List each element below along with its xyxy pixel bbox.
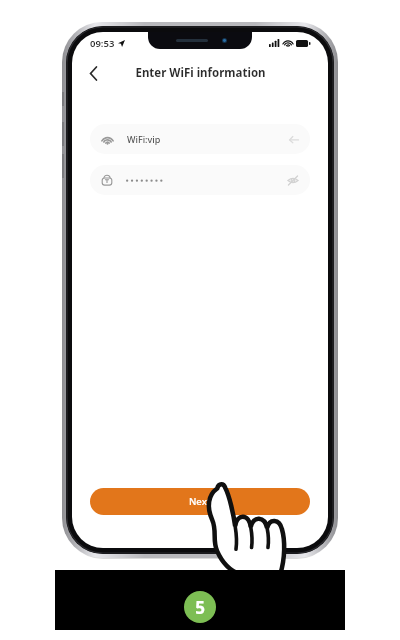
button[interactable]: Next — [90, 488, 310, 515]
staticText: 5 — [195, 596, 205, 619]
button[interactable]: Show password — [90, 165, 310, 195]
button[interactable]: WiFi:vip — [90, 124, 310, 154]
staticText: 09:53 — [90, 37, 115, 50]
staticText: Enter WiFi information — [135, 65, 266, 81]
button[interactable]: Show password — [286, 174, 299, 187]
staticText: WiFi:vip — [127, 133, 161, 145]
staticText: Next — [189, 495, 211, 508]
button[interactable]: Back — [80, 60, 106, 86]
